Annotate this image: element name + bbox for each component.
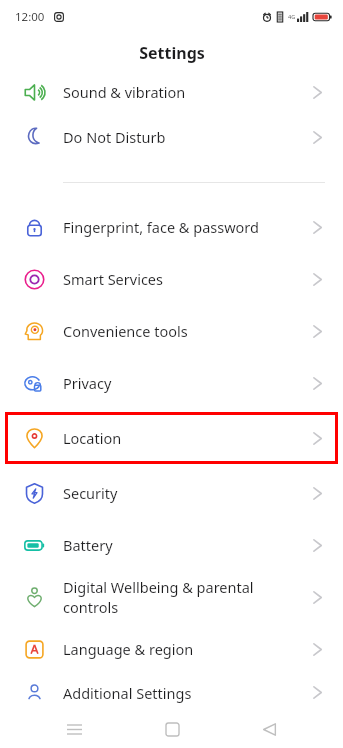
button[interactable]: Battery xyxy=(0,519,343,571)
button[interactable]: Security xyxy=(0,467,343,519)
button[interactable]: Convenience tools xyxy=(0,305,343,357)
button[interactable]: Language & region xyxy=(0,623,343,675)
button[interactable]: Privacy xyxy=(0,357,343,409)
staticText: Smart Services xyxy=(63,269,305,289)
button[interactable]: Smart Services xyxy=(0,253,343,305)
staticText: Location xyxy=(63,428,305,448)
button[interactable]: Back xyxy=(245,710,293,748)
staticText: Digital Wellbeing & parental controls xyxy=(63,577,305,617)
staticText: 4G xyxy=(288,13,296,20)
staticText: Settings xyxy=(139,42,205,64)
button[interactable]: Do Not Disturb xyxy=(0,111,343,163)
button[interactable]: Digital Wellbeing & parental controls xyxy=(0,571,343,623)
button[interactable]: Location xyxy=(5,412,338,464)
staticText: Convenience tools xyxy=(63,321,305,341)
staticText: Security xyxy=(63,483,305,503)
staticText: Sound & vibration xyxy=(63,82,305,102)
staticText: Fingerprint, face & password xyxy=(63,217,305,237)
button[interactable]: Recent apps xyxy=(50,710,98,748)
staticText: Additional Settings xyxy=(63,683,305,703)
staticText: Privacy xyxy=(63,373,305,393)
staticText: 12:00 xyxy=(15,9,45,25)
staticText: Battery xyxy=(63,535,305,555)
staticText: Do Not Disturb xyxy=(63,127,305,147)
button[interactable]: Additional Settings xyxy=(0,675,343,710)
button[interactable]: Home xyxy=(148,710,196,748)
staticText: Language & region xyxy=(63,639,305,659)
button[interactable]: Sound & vibration xyxy=(0,73,343,111)
button[interactable]: Fingerprint, face & password xyxy=(0,201,343,253)
